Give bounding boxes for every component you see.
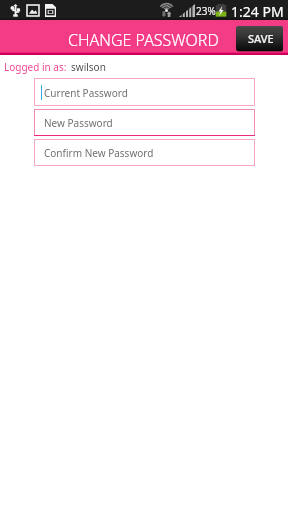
staticText: 23% xyxy=(196,4,216,18)
other: Mobile signal xyxy=(179,4,195,17)
staticText: New Password xyxy=(44,116,113,130)
staticText: swilson xyxy=(71,60,106,74)
staticText: Current Password xyxy=(44,86,128,100)
staticText: Logged in as: xyxy=(4,60,67,74)
button[interactable]: New Password xyxy=(34,109,255,136)
other: Document xyxy=(45,4,56,17)
button[interactable]: Confirm New Password xyxy=(34,139,255,166)
other: Screenshot captured xyxy=(27,5,39,16)
staticText: 1:24 PM xyxy=(231,2,284,21)
other: Wifi xyxy=(159,4,174,17)
staticText: CHANGE PASSWORD xyxy=(68,29,219,51)
other: USB connected xyxy=(11,4,20,17)
button[interactable]: Current Password xyxy=(34,78,255,106)
staticText: Confirm New Password xyxy=(44,146,154,160)
other: Battery charging 23 percent xyxy=(215,3,227,17)
button[interactable]: SAVE xyxy=(236,26,283,51)
staticText: SAVE xyxy=(248,31,274,46)
